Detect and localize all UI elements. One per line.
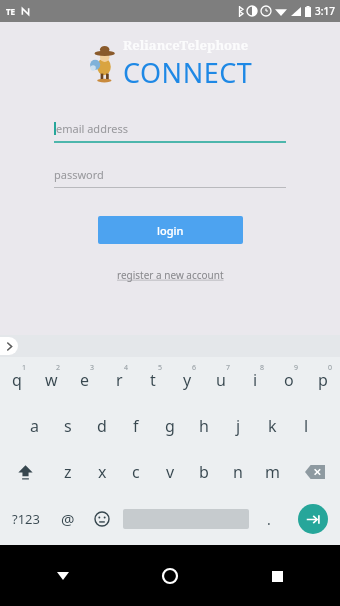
staticText: login bbox=[157, 223, 184, 238]
button[interactable]: ?123 bbox=[0, 495, 51, 543]
button[interactable]: Backspace bbox=[289, 449, 340, 495]
staticText: 3 bbox=[90, 363, 95, 373]
staticText: 6 bbox=[192, 363, 197, 373]
staticText: i bbox=[253, 369, 258, 391]
staticText: 7 bbox=[226, 363, 231, 373]
button[interactable]: r bbox=[102, 357, 136, 403]
staticText: . bbox=[267, 510, 271, 529]
button[interactable]: Next bbox=[298, 504, 328, 534]
staticText: x bbox=[98, 461, 107, 483]
staticText: g bbox=[165, 415, 175, 437]
staticText: TE bbox=[6, 6, 16, 17]
staticText: 0 bbox=[328, 363, 333, 373]
button[interactable]: Hide keyboard bbox=[48, 561, 78, 591]
button[interactable]: y bbox=[170, 357, 204, 403]
staticText: w bbox=[45, 369, 58, 391]
button[interactable]: v bbox=[153, 449, 187, 495]
staticText: k bbox=[268, 415, 277, 437]
button[interactable]: k bbox=[255, 403, 289, 449]
staticText: l bbox=[304, 415, 309, 437]
button[interactable]: q bbox=[0, 357, 34, 403]
button[interactable]: f bbox=[119, 403, 153, 449]
staticText: h bbox=[199, 415, 209, 437]
staticText: f bbox=[133, 415, 139, 437]
staticText: q bbox=[12, 369, 22, 391]
staticText: u bbox=[216, 369, 226, 391]
staticText: 1 bbox=[22, 363, 27, 373]
button[interactable]: s bbox=[51, 403, 85, 449]
button[interactable]: e bbox=[68, 357, 102, 403]
staticText: 2 bbox=[56, 363, 61, 373]
button[interactable]: t bbox=[136, 357, 170, 403]
staticText: ?123 bbox=[12, 510, 40, 528]
button[interactable]: m bbox=[255, 449, 289, 495]
staticText: 5 bbox=[158, 363, 163, 373]
button[interactable]: Emoji bbox=[85, 495, 119, 543]
staticText: o bbox=[284, 369, 294, 391]
staticText: a bbox=[30, 415, 39, 437]
staticText: 8 bbox=[260, 363, 265, 373]
button[interactable]: a bbox=[17, 403, 51, 449]
button[interactable]: j bbox=[221, 403, 255, 449]
button[interactable]: p bbox=[306, 357, 340, 403]
button[interactable]: o bbox=[272, 357, 306, 403]
button[interactable]: @ bbox=[51, 495, 85, 543]
staticText: CONNECT bbox=[123, 54, 253, 91]
button[interactable]: u bbox=[204, 357, 238, 403]
staticText: s bbox=[64, 415, 72, 437]
staticText: register a new account bbox=[117, 268, 224, 282]
button[interactable]: g bbox=[153, 403, 187, 449]
button[interactable]: Expand suggestions bbox=[0, 337, 18, 355]
staticText: e bbox=[80, 369, 90, 391]
button[interactable]: i bbox=[238, 357, 272, 403]
staticText: t bbox=[150, 369, 156, 391]
button[interactable]: Recents bbox=[262, 561, 292, 591]
staticText: email address bbox=[56, 121, 128, 136]
staticText: z bbox=[64, 461, 72, 483]
staticText: d bbox=[97, 415, 107, 437]
button[interactable]: c bbox=[119, 449, 153, 495]
button[interactable]: n bbox=[221, 449, 255, 495]
staticText: n bbox=[233, 461, 243, 483]
button[interactable]: l bbox=[289, 403, 323, 449]
staticText: 3:17 bbox=[315, 4, 335, 18]
staticText: 9 bbox=[294, 363, 299, 373]
button[interactable]: w bbox=[34, 357, 68, 403]
staticText: c bbox=[132, 461, 140, 483]
button[interactable]: x bbox=[85, 449, 119, 495]
staticText: j bbox=[236, 415, 241, 437]
button[interactable]: login bbox=[98, 216, 243, 244]
button[interactable]: d bbox=[85, 403, 119, 449]
staticText: @ bbox=[61, 509, 75, 529]
staticText: v bbox=[166, 461, 175, 483]
staticText: b bbox=[199, 461, 209, 483]
button[interactable]: Shift bbox=[0, 449, 51, 495]
button[interactable]: . bbox=[252, 495, 286, 543]
staticText: password bbox=[54, 167, 104, 182]
staticText: m bbox=[265, 461, 280, 483]
button[interactable]: h bbox=[187, 403, 221, 449]
button[interactable]: Home bbox=[155, 561, 185, 591]
staticText: y bbox=[183, 369, 192, 391]
button[interactable]: b bbox=[187, 449, 221, 495]
staticText: RelianceTelephone bbox=[123, 36, 249, 54]
staticText: p bbox=[318, 369, 328, 391]
staticText: r bbox=[116, 369, 123, 391]
button[interactable]: register a new account bbox=[113, 264, 228, 286]
button[interactable]: z bbox=[51, 449, 85, 495]
staticText: 4 bbox=[124, 363, 129, 373]
